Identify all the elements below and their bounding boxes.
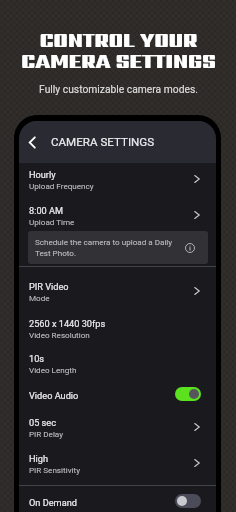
button[interactable]: 10s (19, 340, 216, 377)
button[interactable]: Info (184, 242, 196, 254)
button[interactable]: 8:00 AM (19, 199, 216, 231)
staticText: CONTROL YOUR CAMERA SETTINGS (21, 27, 216, 75)
staticText: Video Audio (29, 390, 175, 401)
staticText: 05 sec (29, 417, 57, 428)
staticText: High (29, 453, 49, 464)
staticText: On Demand (29, 497, 175, 508)
button[interactable]: 05 sec (19, 404, 216, 440)
button[interactable]: Schedule the camera to upload a Daily Te… (28, 231, 208, 264)
staticText: Schedule the camera to upload a Daily Te… (35, 237, 180, 258)
staticText: 2560 x 1440 30fps (29, 318, 106, 329)
staticText: Video Length (29, 365, 77, 374)
button[interactable]: Back (19, 121, 216, 163)
staticText: Fully customizable camera modes. (39, 83, 198, 95)
staticText: Hourly (29, 169, 56, 180)
staticText: 8:00 AM (29, 205, 64, 216)
staticText: CAMERA SETTINGS (51, 135, 155, 149)
button[interactable]: Hourly (19, 163, 216, 199)
button[interactable]: High (19, 440, 216, 485)
button[interactable]: 2560 x 1440 30fps (19, 304, 216, 340)
staticText: PIR Video (29, 281, 69, 292)
staticText: Video Resolution (29, 330, 90, 339)
staticText: 10s (29, 353, 45, 364)
staticText: Upload Frequency (29, 181, 94, 190)
staticText: Upload Time (29, 217, 75, 226)
button[interactable]: Back (24, 134, 40, 150)
button[interactable]: PIR Video (19, 267, 216, 304)
staticText: PIR Sensitivity (29, 465, 80, 474)
staticText: Mode (29, 293, 50, 302)
staticText: PIR Delay (29, 429, 64, 438)
button[interactable]: On Demand (19, 486, 216, 512)
button[interactable]: Video Audio (19, 377, 216, 404)
